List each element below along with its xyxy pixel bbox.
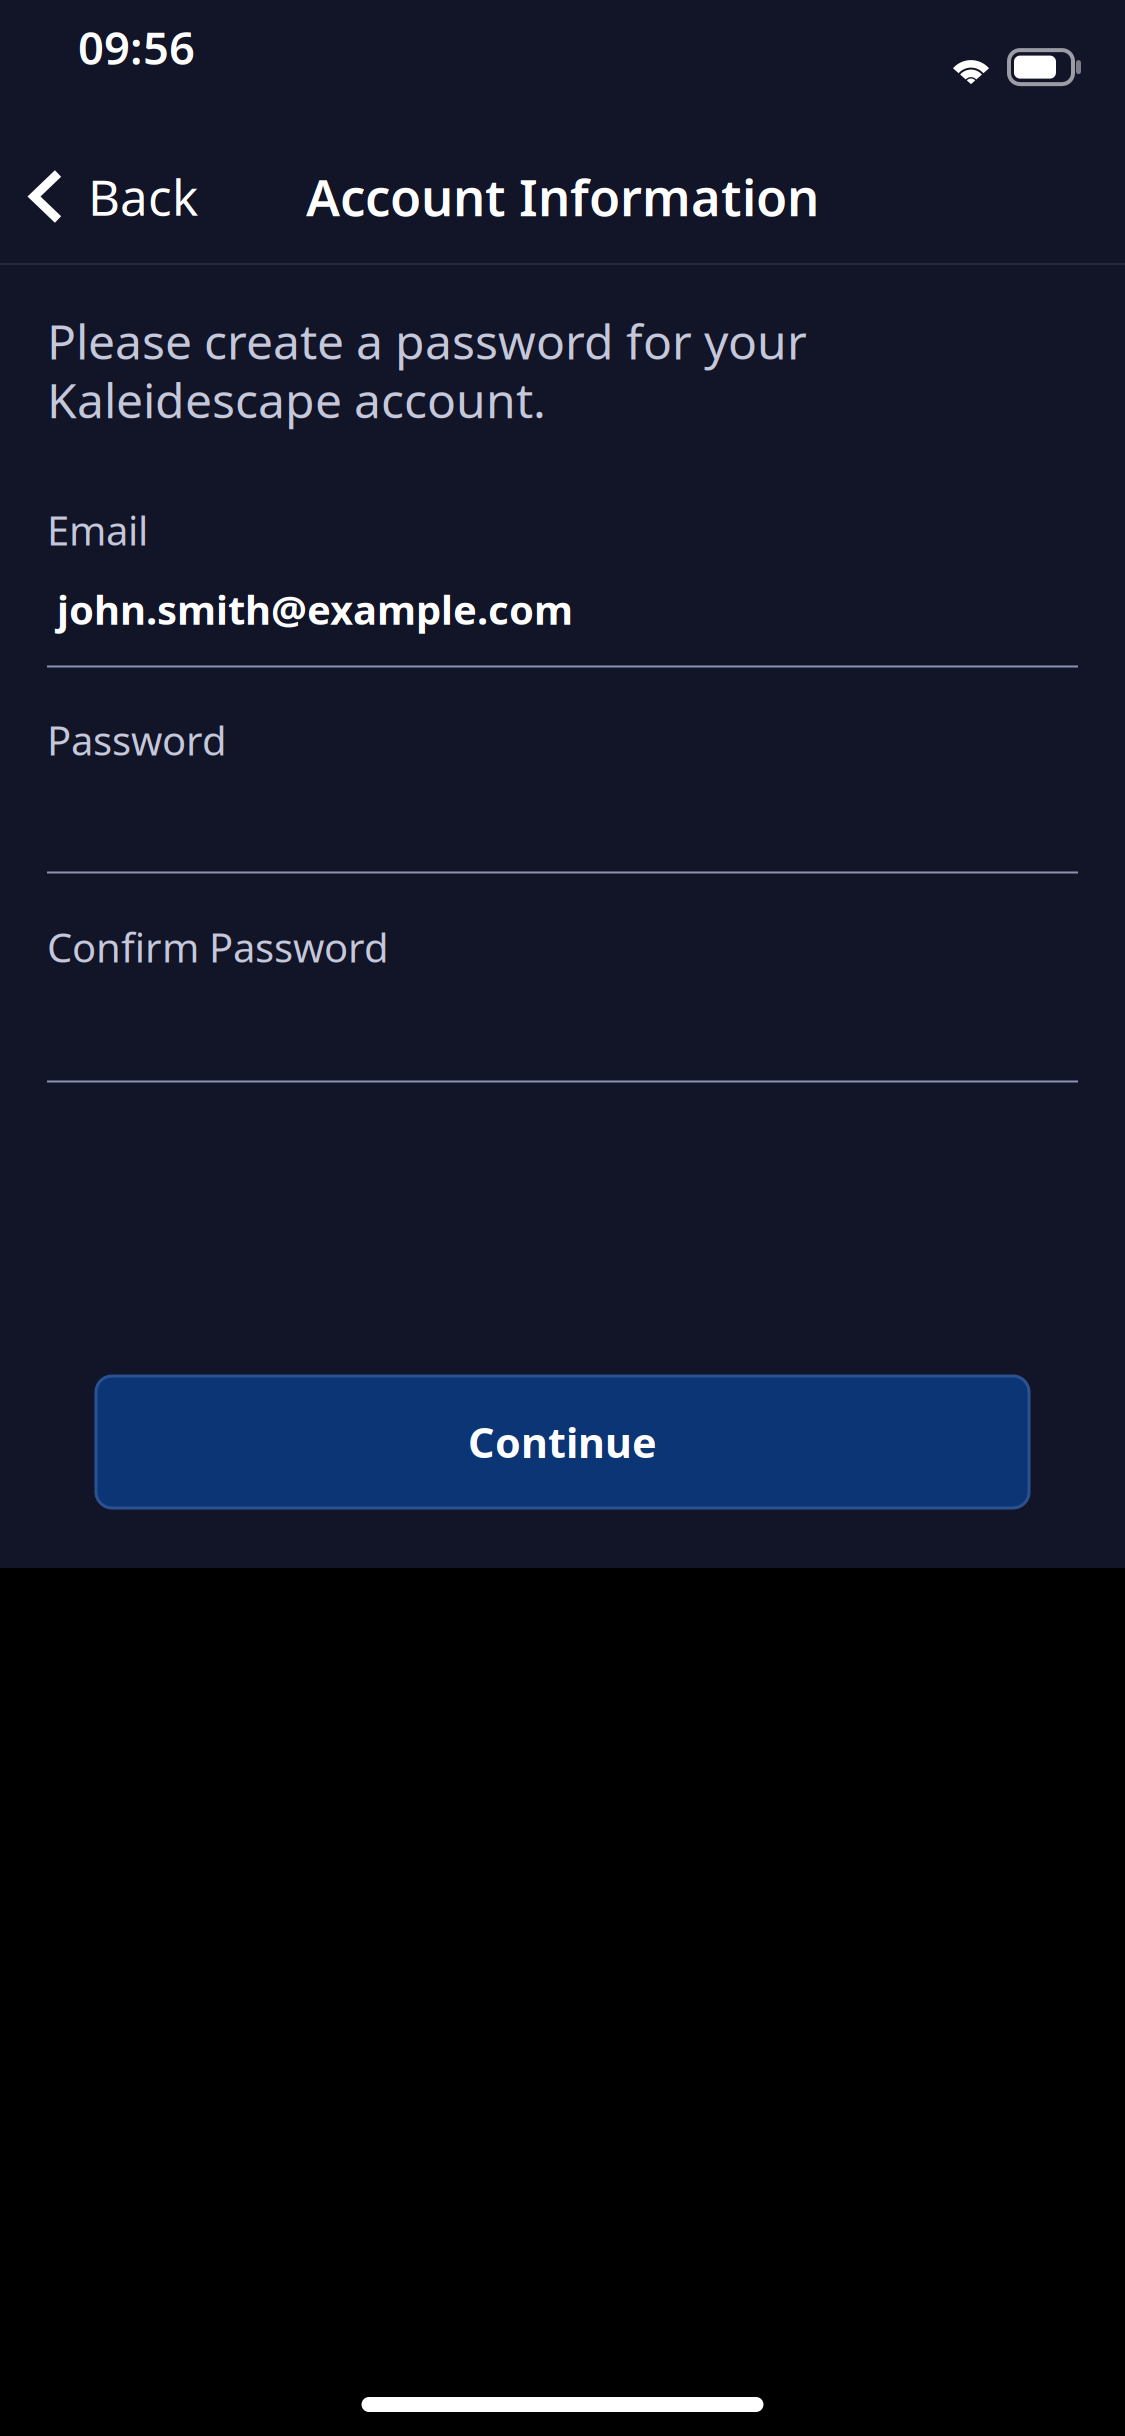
staticText: john.smith@example.com: [57, 583, 573, 636]
button[interactable]: Confirm Password: [47, 873, 1078, 1082]
staticText: Password: [47, 713, 227, 767]
button[interactable]: Password: [47, 667, 1078, 873]
staticText: Account Information: [306, 163, 819, 230]
button[interactable]: Back: [0, 121, 222, 271]
staticText: 09:56: [78, 17, 195, 77]
button[interactable]: Continue: [96, 1376, 1029, 1508]
staticText: Confirm Password: [47, 920, 389, 974]
staticText: Back: [88, 164, 198, 229]
staticText: Email: [47, 503, 148, 557]
button[interactable]: Email: [47, 503, 1078, 667]
staticText: Continue: [468, 1415, 657, 1469]
staticText: Please create a password for your Kaleid…: [47, 309, 807, 431]
